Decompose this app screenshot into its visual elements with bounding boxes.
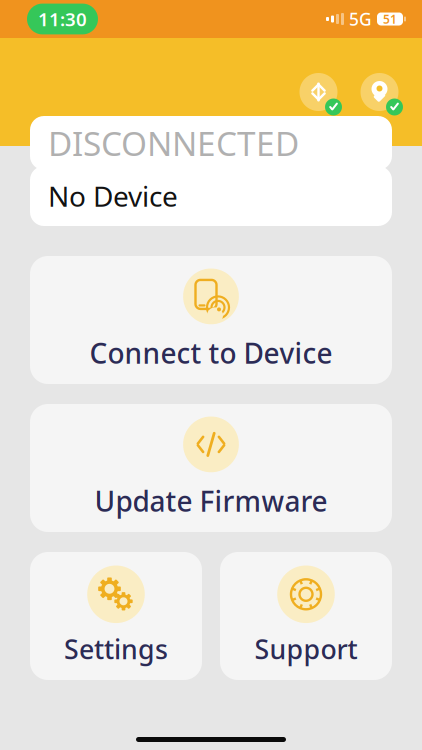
staticText: DISCONNECTED [48, 121, 299, 165]
staticText: 11:30 [38, 7, 87, 31]
button[interactable]: Update Firmware [30, 404, 392, 532]
button[interactable]: Support [220, 552, 392, 680]
staticText: No Device [48, 177, 178, 215]
staticText: Connect to Device [89, 334, 332, 371]
staticText: Settings [64, 631, 168, 666]
staticText: Support [254, 631, 357, 666]
staticText: 5G [349, 7, 372, 30]
button[interactable]: Location enabled [353, 65, 406, 118]
button[interactable]: Connect to Device [30, 256, 392, 384]
staticText: 51 [383, 11, 397, 27]
button[interactable]: Bluetooth connected [292, 65, 345, 118]
staticText: Update Firmware [94, 482, 327, 519]
button[interactable]: Settings [30, 552, 202, 680]
